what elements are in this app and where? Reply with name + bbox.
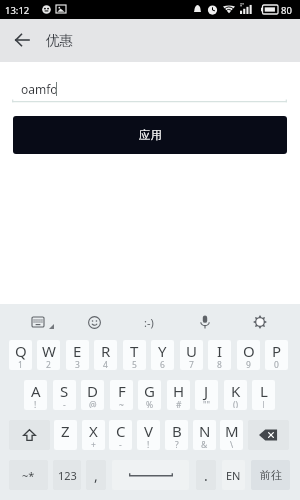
- button[interactable]: V: [137, 420, 160, 450]
- staticText: M: [225, 421, 239, 441]
- button[interactable]: C: [109, 420, 132, 450]
- button[interactable]: U: [180, 340, 203, 370]
- staticText: Y: [158, 341, 167, 361]
- staticText: ~: [119, 399, 124, 408]
- button[interactable]: A: [24, 380, 47, 410]
- staticText: oamfo: [21, 81, 58, 97]
- other: Space: [129, 472, 173, 478]
- button[interactable]: B: [165, 420, 188, 450]
- staticText: 3: [75, 359, 80, 368]
- staticText: ?: [175, 439, 179, 448]
- staticText: I: [217, 341, 223, 361]
- button[interactable]: Voice input: [189, 308, 221, 336]
- button[interactable]: 前往: [251, 460, 290, 490]
- staticText: X: [89, 421, 98, 441]
- button[interactable]: D: [81, 380, 104, 410]
- staticText: 5: [132, 359, 137, 368]
- button[interactable]: Z: [54, 420, 77, 450]
- staticText: ,: [94, 466, 98, 485]
- button[interactable]: 123: [53, 460, 81, 490]
- staticText: 1: [18, 359, 23, 368]
- staticText: +: [91, 439, 96, 448]
- button[interactable]: K: [224, 380, 247, 410]
- staticText: %: [146, 399, 154, 408]
- button[interactable]: O: [237, 340, 260, 370]
- staticText: :-): [144, 315, 154, 330]
- staticText: &: [201, 439, 208, 448]
- button[interactable]: J: [195, 380, 218, 410]
- staticText: EN: [226, 468, 241, 483]
- staticText: @: [89, 399, 97, 408]
- staticText: C: [116, 421, 126, 441]
- staticText: N: [199, 421, 211, 441]
- button[interactable]: E: [66, 340, 89, 370]
- button[interactable]: Emoticons: [133, 308, 165, 336]
- button[interactable]: G: [138, 380, 161, 410]
- staticText: S: [60, 381, 69, 401]
- button[interactable]: Settings: [244, 308, 276, 336]
- button[interactable]: H: [167, 380, 190, 410]
- staticText: #: [176, 399, 182, 408]
- staticText: 123: [58, 468, 77, 483]
- staticText: A: [31, 381, 41, 401]
- other: Backspace: [259, 429, 278, 441]
- staticText: 6: [160, 359, 165, 368]
- button[interactable]: Space: [112, 460, 189, 490]
- staticText: W: [42, 341, 56, 361]
- button[interactable]: S: [53, 380, 76, 410]
- staticText: "": [203, 399, 210, 408]
- staticText: 优惠: [46, 32, 73, 49]
- staticText: !: [147, 439, 150, 448]
- button[interactable]: W: [37, 340, 60, 370]
- button[interactable]: Keyboard layout: [22, 308, 54, 336]
- staticText: U: [186, 341, 197, 361]
- button[interactable]: ~*: [9, 460, 48, 490]
- button[interactable]: T: [123, 340, 146, 370]
- button[interactable]: X: [82, 420, 105, 450]
- button[interactable]: I: [208, 340, 231, 370]
- staticText: 前往: [260, 468, 282, 482]
- button[interactable]: R: [94, 340, 117, 370]
- staticText: (): [233, 399, 239, 408]
- staticText: 7: [189, 359, 194, 368]
- button[interactable]: Emoji: [78, 308, 110, 336]
- staticText: B: [172, 421, 182, 441]
- staticText: D: [87, 381, 98, 401]
- other: Shift: [23, 428, 36, 442]
- staticText: |: [261, 399, 266, 408]
- button[interactable]: Y: [151, 340, 174, 370]
- staticText: G: [144, 381, 155, 401]
- button[interactable]: Shift: [9, 420, 50, 450]
- button[interactable]: EN: [222, 460, 245, 490]
- button[interactable]: F: [110, 380, 133, 410]
- staticText: J: [204, 381, 209, 401]
- button[interactable]: .: [196, 460, 216, 490]
- staticText: P: [272, 341, 282, 361]
- button[interactable]: ,: [86, 460, 106, 490]
- staticText: 0: [274, 359, 279, 368]
- staticText: E: [73, 341, 82, 361]
- staticText: 2: [46, 359, 51, 368]
- button[interactable]: P: [265, 340, 288, 370]
- staticText: F: [118, 381, 126, 401]
- staticText: Q: [15, 341, 27, 361]
- button[interactable]: L: [252, 380, 275, 410]
- staticText: 8: [217, 359, 222, 368]
- staticText: !: [34, 399, 37, 408]
- staticText: H: [173, 381, 185, 401]
- staticText: -: [119, 439, 122, 448]
- staticText: ~*: [22, 468, 35, 483]
- button[interactable]: Q: [9, 340, 32, 370]
- staticText: -: [63, 399, 66, 408]
- staticText: K: [231, 381, 241, 401]
- button[interactable]: M: [220, 420, 243, 450]
- button[interactable]: 应用: [13, 116, 287, 154]
- staticText: .: [204, 466, 208, 485]
- button[interactable]: N: [193, 420, 216, 450]
- staticText: \: [230, 439, 234, 448]
- staticText: O: [243, 341, 255, 361]
- staticText: 80: [281, 4, 292, 17]
- button[interactable]: Backspace: [248, 420, 289, 450]
- button[interactable]: Back: [8, 26, 36, 54]
